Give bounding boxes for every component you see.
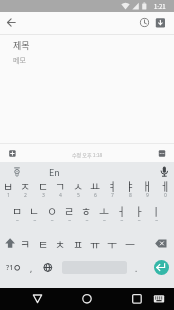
staticText: ㅜ xyxy=(107,236,118,252)
staticText: 2 xyxy=(24,192,27,199)
staticText: 제목 xyxy=(13,39,30,52)
staticText: 9 xyxy=(146,192,149,199)
button[interactable]: ㅡ xyxy=(122,231,139,256)
button[interactable]: ㅎ xyxy=(78,198,95,223)
staticText: ㅅ xyxy=(73,178,84,194)
staticText: ㅗ xyxy=(99,203,110,219)
button[interactable]: . xyxy=(130,253,143,283)
button[interactable]: ㅍ xyxy=(70,231,87,256)
button[interactable]: ㅈ xyxy=(17,176,34,202)
staticText: ㅠ xyxy=(90,236,101,252)
staticText: ㅊ xyxy=(55,236,66,252)
button[interactable]: ㅌ xyxy=(35,231,52,256)
button[interactable]: ㄷ xyxy=(35,176,52,202)
button[interactable]: ㄴ xyxy=(26,198,43,223)
staticText: 3 xyxy=(42,192,45,199)
button[interactable] xyxy=(156,160,172,176)
staticText: ㄹ xyxy=(64,203,75,219)
button[interactable] xyxy=(148,230,174,255)
button[interactable]: ㅇ xyxy=(44,198,61,223)
button[interactable]: ㅑ xyxy=(122,176,139,202)
staticText: ㅇ xyxy=(47,203,58,219)
button[interactable] xyxy=(27,288,48,310)
button[interactable]: ㅛ xyxy=(87,176,104,202)
button[interactable]: ㅔ xyxy=(157,176,174,202)
staticText: , xyxy=(30,263,33,274)
button[interactable]: ㅗ xyxy=(96,198,113,223)
staticText: 0 xyxy=(164,192,167,199)
button[interactable]: ㄱ xyxy=(52,176,69,202)
staticText: ㅛ xyxy=(90,178,101,194)
button[interactable] xyxy=(153,142,168,157)
button[interactable] xyxy=(154,260,169,275)
staticText: ㅏ xyxy=(134,203,145,219)
staticText: ㅑ xyxy=(125,178,136,194)
button[interactable]: ?1 xyxy=(0,253,19,283)
button[interactable]: ㅅ xyxy=(70,176,87,202)
staticText: 1 xyxy=(7,192,10,199)
button[interactable]: ㅋ xyxy=(17,231,34,256)
button[interactable]: ㅊ xyxy=(52,231,69,256)
staticText: 6 xyxy=(94,192,97,199)
button[interactable] xyxy=(2,14,22,32)
button[interactable]: ㄹ xyxy=(61,198,78,223)
staticText: . xyxy=(135,263,138,274)
staticText: ㅂ xyxy=(3,178,14,194)
staticText: 7 xyxy=(111,192,114,199)
staticText: 5 xyxy=(77,192,80,199)
staticText: ㅎ xyxy=(81,203,92,219)
button[interactable] xyxy=(149,288,169,310)
button[interactable]: ㅣ xyxy=(148,198,165,223)
button[interactable] xyxy=(136,14,153,32)
button[interactable]: ㅏ xyxy=(131,198,148,223)
button[interactable] xyxy=(41,253,55,283)
button[interactable]: ㅂ xyxy=(0,176,17,202)
staticText: ㅡ xyxy=(125,236,136,252)
staticText: ㄱ xyxy=(55,178,66,194)
staticText: 4 xyxy=(59,192,62,199)
button[interactable]: ㅁ xyxy=(9,198,26,223)
button[interactable]: ㅓ xyxy=(113,198,130,223)
staticText: 1:21 xyxy=(154,2,166,11)
staticText: ㅈ xyxy=(20,178,31,194)
staticText: ㄴ xyxy=(29,203,40,219)
staticText: ㄷ xyxy=(38,178,49,194)
staticText: ㅌ xyxy=(38,236,49,252)
button[interactable]: , xyxy=(24,253,38,283)
staticText: 수정 오후 1:18 xyxy=(72,151,103,158)
staticText: ㅔ xyxy=(160,178,171,194)
staticText: ㅍ xyxy=(73,236,84,252)
button[interactable] xyxy=(8,160,24,176)
staticText: 메모 xyxy=(13,55,26,65)
staticText: ㅁ xyxy=(12,203,23,219)
button[interactable]: ㅕ xyxy=(104,176,121,202)
button[interactable] xyxy=(6,142,22,157)
button[interactable] xyxy=(126,288,148,310)
button[interactable]: ㅠ xyxy=(87,231,104,256)
staticText: ㅣ xyxy=(151,203,162,219)
staticText: ㅐ xyxy=(142,178,153,194)
button[interactable]: ㅜ xyxy=(104,231,121,256)
button[interactable]: ㅐ xyxy=(139,176,156,202)
button[interactable] xyxy=(153,14,170,32)
button[interactable] xyxy=(76,288,98,310)
staticText: ㅋ xyxy=(20,236,31,252)
button[interactable] xyxy=(0,230,17,255)
staticText: ㅓ xyxy=(116,203,127,219)
staticText: 8 xyxy=(129,192,132,199)
staticText: ㅕ xyxy=(107,178,118,194)
staticText: ?1 xyxy=(6,263,14,273)
staticText: En xyxy=(49,166,60,179)
